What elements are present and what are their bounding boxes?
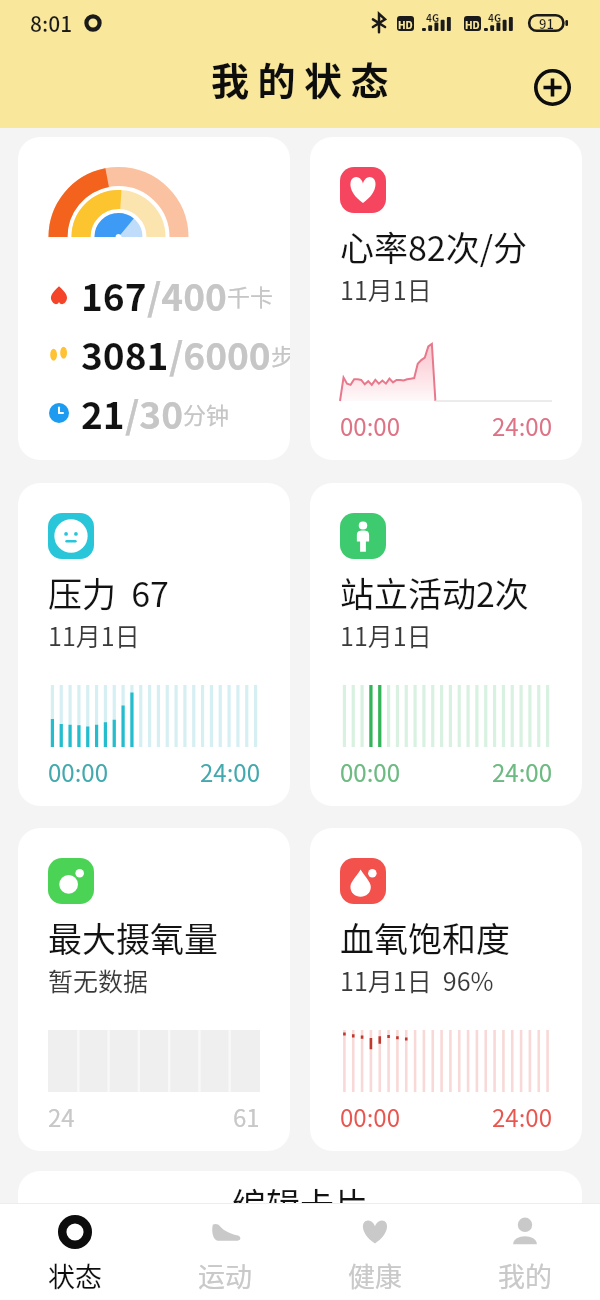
staticText: 11月1日	[340, 271, 432, 307]
staticText: 00:00	[340, 408, 400, 443]
staticText: /30	[125, 386, 183, 440]
staticText: 编辑卡片	[232, 1179, 368, 1228]
staticText: HD	[465, 17, 480, 31]
staticText: 21	[81, 386, 125, 440]
staticText: 4G	[488, 10, 502, 24]
staticText: 3081	[81, 327, 169, 381]
button[interactable]: 健康	[300, 1204, 450, 1300]
staticText: 运动	[198, 1256, 252, 1295]
staticText: /6000	[169, 327, 271, 381]
staticText: 00:00	[340, 754, 400, 789]
button[interactable]: 编辑卡片	[18, 1171, 582, 1300]
staticText: 00:00	[48, 754, 108, 789]
staticText: 健康	[348, 1256, 402, 1295]
button[interactable]: 167	[18, 137, 290, 460]
staticText: 11月1日	[340, 617, 432, 653]
staticText: 61	[233, 1099, 260, 1134]
staticText: /400	[147, 268, 227, 322]
staticText: 步	[271, 338, 290, 371]
button[interactable]: 最大摄氧量	[18, 828, 290, 1151]
staticText: 24:00	[492, 408, 552, 443]
staticText: 血氧饱和度	[340, 913, 510, 962]
staticText: 千卡	[227, 279, 273, 312]
button[interactable]: 我的	[450, 1204, 600, 1300]
staticText: 我的状态	[211, 51, 398, 106]
staticText: 压力 67	[48, 568, 169, 617]
button[interactable]: 站立活动2次	[310, 483, 582, 806]
staticText: 站立活动2次	[340, 568, 529, 617]
button[interactable]: 状态	[0, 1204, 150, 1300]
staticText: 24:00	[200, 754, 260, 789]
staticText: 167	[81, 268, 147, 322]
staticText: 最大摄氧量	[48, 913, 218, 962]
staticText: 8:01	[30, 8, 73, 38]
staticText: 11月1日 96%	[340, 962, 494, 998]
staticText: 分钟	[183, 397, 229, 430]
staticText: 91	[539, 14, 554, 32]
button[interactable]: 血氧饱和度	[310, 828, 582, 1151]
button[interactable]: 压力 67	[18, 483, 290, 806]
staticText: 24:00	[492, 1099, 552, 1134]
button[interactable]: 运动	[150, 1204, 300, 1300]
staticText: HD	[398, 17, 413, 31]
staticText: 00:00	[340, 1099, 400, 1134]
staticText: 4G	[426, 10, 440, 24]
staticText: 心率82次/分	[340, 222, 528, 271]
staticText: 我的	[498, 1256, 552, 1295]
staticText: 状态	[48, 1256, 102, 1295]
staticText: 暂无数据	[48, 962, 149, 998]
button[interactable]: Add card	[530, 65, 574, 109]
staticText: 11月1日	[48, 617, 140, 653]
button[interactable]: 心率82次/分	[310, 137, 582, 460]
staticText: 24	[48, 1099, 75, 1134]
staticText: 24:00	[492, 754, 552, 789]
